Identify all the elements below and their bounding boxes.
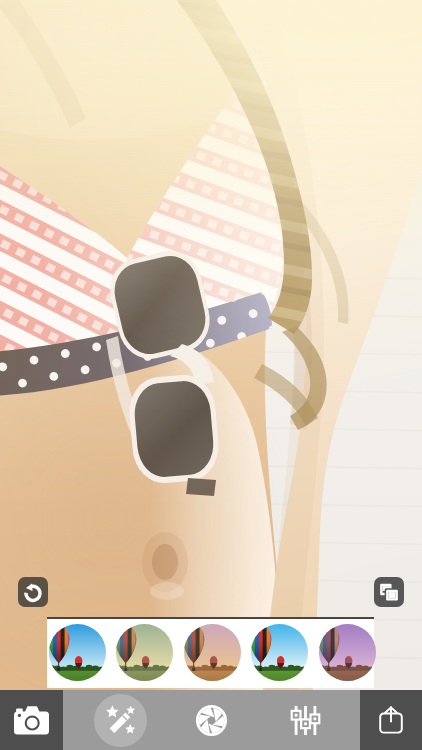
button[interactable]: Filter 5 xyxy=(319,624,376,681)
button[interactable]: Effects xyxy=(74,690,166,750)
button[interactable]: Filter 4 xyxy=(251,624,308,681)
button[interactable]: Adjust xyxy=(256,690,354,750)
button[interactable]: Share xyxy=(360,690,422,750)
button[interactable]: Camera xyxy=(0,690,63,750)
button[interactable]: Filter 3 xyxy=(184,624,241,681)
button[interactable]: Compare xyxy=(374,577,404,607)
button[interactable]: Aperture xyxy=(166,690,256,750)
button[interactable]: Filter 2 xyxy=(116,624,173,681)
button[interactable]: Filter 1 xyxy=(49,624,106,681)
button[interactable]: Undo xyxy=(18,577,48,607)
